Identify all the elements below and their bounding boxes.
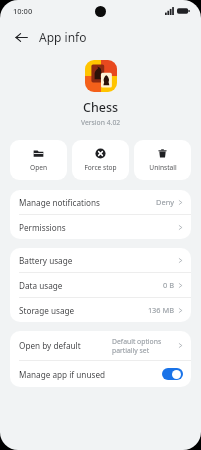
button[interactable]: Manage app if unused: [10, 361, 191, 387]
staticText: Version 4.02: [81, 118, 121, 127]
staticText: Open by default: [19, 340, 81, 351]
staticText: Default options partially set: [112, 337, 174, 355]
button[interactable]: Data usage: [10, 273, 191, 297]
staticText: Manage notifications: [19, 197, 100, 208]
button[interactable]: Permissions: [10, 215, 191, 239]
button[interactable]: Force stop: [72, 140, 129, 180]
staticText: 10:00: [13, 6, 33, 16]
staticText: 0 B: [163, 280, 174, 290]
staticText: Chess: [83, 99, 119, 116]
button[interactable]: Open: [10, 140, 67, 180]
staticText: Deny: [156, 197, 174, 207]
staticText: 136 MB: [147, 305, 174, 315]
staticText: Manage app if unused: [19, 369, 106, 380]
button[interactable]: Back: [8, 24, 34, 50]
staticText: Force stop: [84, 163, 117, 172]
staticText: Open: [30, 163, 47, 172]
button[interactable]: Battery usage: [10, 248, 191, 272]
button[interactable]: Uninstall: [134, 140, 191, 180]
staticText: Data usage: [19, 280, 63, 291]
staticText: App info: [39, 29, 87, 45]
staticText: Battery usage: [19, 255, 73, 266]
staticText: Permissions: [19, 222, 66, 233]
staticText: Storage usage: [19, 305, 75, 316]
button[interactable]: Manage notifications: [10, 190, 191, 214]
button[interactable]: Storage usage: [10, 298, 191, 322]
button[interactable]: Open by default: [10, 331, 191, 360]
staticText: Uninstall: [149, 163, 177, 172]
